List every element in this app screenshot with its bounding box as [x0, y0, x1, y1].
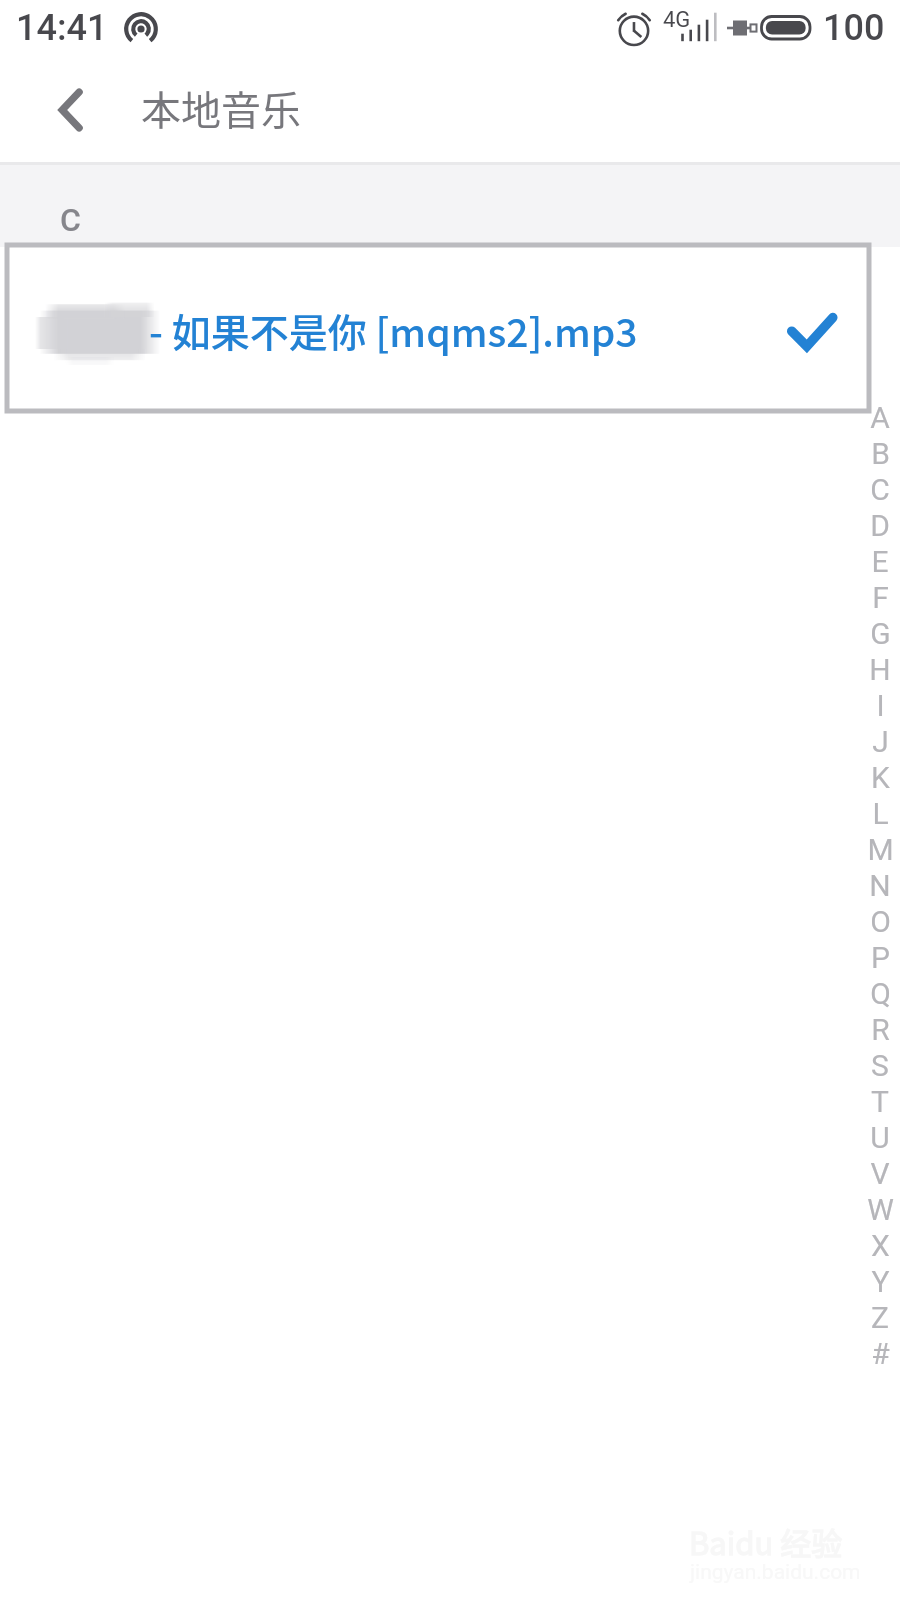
button[interactable]: B: [859, 435, 900, 471]
button[interactable]: Q: [859, 975, 900, 1011]
button[interactable]: J: [859, 723, 900, 759]
button[interactable]: W: [859, 1191, 900, 1227]
button[interactable]: L: [859, 795, 900, 831]
staticText: V: [870, 1156, 890, 1191]
staticText: I: [876, 688, 885, 723]
staticText: D: [870, 508, 890, 543]
staticText: - 如果不是你 [mqms2].mp3: [149, 302, 638, 358]
staticText: Baidu 经验: [689, 1519, 843, 1564]
staticText: L: [872, 796, 889, 831]
button[interactable]: R: [859, 1011, 900, 1047]
button[interactable]: S: [859, 1047, 900, 1083]
staticText: 本地音乐: [141, 79, 301, 137]
button[interactable]: X: [859, 1227, 900, 1263]
button[interactable]: D: [859, 507, 900, 543]
button[interactable]: #: [859, 1335, 900, 1371]
staticText: S: [871, 1048, 889, 1083]
staticText: R: [871, 1012, 890, 1047]
staticText: X: [871, 1228, 890, 1263]
staticText: U: [870, 1120, 890, 1155]
button[interactable]: G: [859, 615, 900, 651]
staticText: P: [871, 940, 890, 975]
staticText: M: [867, 832, 894, 867]
staticText: T: [871, 1084, 889, 1119]
staticText: Y: [871, 1264, 890, 1299]
button[interactable]: T: [859, 1083, 900, 1119]
staticText: N: [869, 868, 891, 903]
button[interactable]: I: [859, 687, 900, 723]
staticText: H: [869, 652, 891, 687]
button[interactable]: P: [859, 939, 900, 975]
staticText: Z: [871, 1300, 889, 1335]
staticText: O: [870, 904, 891, 939]
staticText: C: [870, 472, 890, 507]
staticText: 14:41: [16, 7, 108, 49]
other: Alphabet index: [859, 399, 900, 1371]
button[interactable]: Y: [859, 1263, 900, 1299]
button[interactable]: Z: [859, 1299, 900, 1335]
button[interactable]: C: [859, 471, 900, 507]
button[interactable]: Back: [36, 76, 104, 144]
staticText: #: [871, 1336, 890, 1371]
button[interactable]: H: [859, 651, 900, 687]
button[interactable]: V: [859, 1155, 900, 1191]
button[interactable]: E: [859, 543, 900, 579]
staticText: K: [871, 760, 890, 795]
button[interactable]: A: [859, 399, 900, 435]
button[interactable]: K: [859, 759, 900, 795]
staticText: J: [872, 724, 889, 759]
button[interactable]: O: [859, 903, 900, 939]
button[interactable]: N: [859, 867, 900, 903]
staticText: W: [867, 1192, 894, 1227]
staticText: F: [872, 580, 889, 615]
button[interactable]: U: [859, 1119, 900, 1155]
staticText: Q: [870, 976, 891, 1011]
button[interactable]: F: [859, 579, 900, 615]
staticText: 4G: [663, 7, 691, 33]
button[interactable]: M: [859, 831, 900, 867]
button[interactable]: - 如果不是你 [mqms2].mp3: [7, 245, 869, 411]
staticText: 100: [823, 7, 885, 49]
staticText: C: [60, 201, 81, 239]
staticText: E: [871, 544, 889, 579]
staticText: G: [870, 616, 891, 651]
staticText: A: [870, 400, 890, 435]
staticText: B: [871, 436, 890, 471]
